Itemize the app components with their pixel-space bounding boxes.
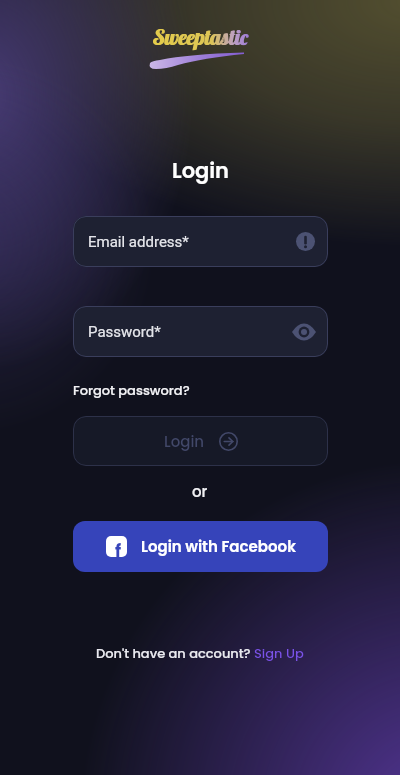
button[interactable]: Email address* [73, 216, 328, 267]
staticText: Sweeptastic [154, 24, 249, 50]
button[interactable]: Forgot password? [73, 381, 190, 399]
staticText: Don't have an account? [96, 644, 254, 662]
button[interactable]: Login [73, 416, 328, 466]
staticText: Login [164, 431, 205, 452]
staticText: Password* [88, 323, 161, 341]
staticText: Email address* [88, 233, 189, 251]
button[interactable]: Sign Up [254, 644, 304, 662]
staticText: f [115, 539, 122, 557]
staticText: Login with Facebook [141, 536, 296, 557]
staticText: Login [172, 156, 229, 185]
staticText: or [192, 481, 208, 502]
button[interactable]: Password* [73, 306, 328, 357]
staticText: Sweeptastic [153, 24, 248, 50]
button[interactable]: f [73, 521, 328, 572]
